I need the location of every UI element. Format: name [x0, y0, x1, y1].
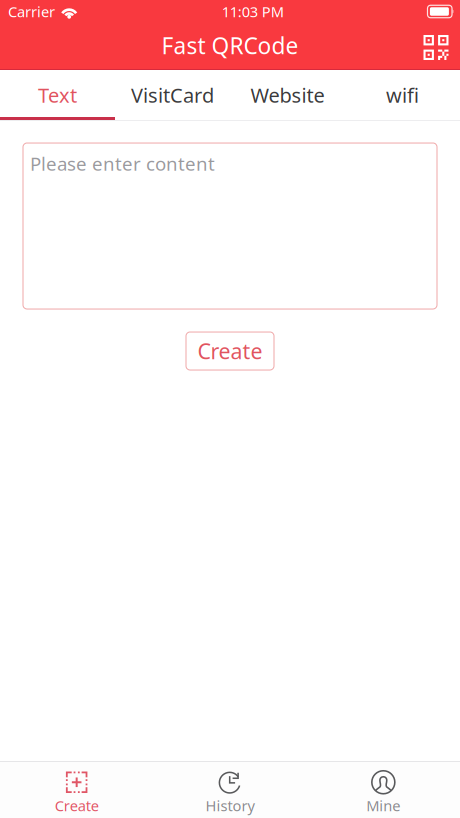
button[interactable]: Website: [230, 70, 345, 120]
staticText: VisitCard: [131, 82, 214, 108]
staticText: 11:03 PM: [222, 2, 284, 21]
staticText: History: [205, 796, 254, 815]
button[interactable]: Scan QR code: [412, 22, 460, 68]
button[interactable]: Text: [0, 70, 115, 120]
button[interactable]: Create: [186, 332, 274, 370]
button[interactable]: Create: [0, 762, 153, 818]
button[interactable]: Mine: [307, 762, 460, 818]
staticText: Website: [250, 82, 324, 108]
staticText: Please enter content: [30, 151, 215, 176]
button[interactable]: VisitCard: [115, 70, 230, 120]
staticText: Carrier: [8, 2, 55, 21]
staticText: Fast QRCode: [161, 30, 298, 60]
staticText: Create: [197, 337, 262, 365]
staticText: Mine: [366, 796, 400, 815]
staticText: Create: [55, 796, 99, 815]
staticText: wifi: [386, 82, 419, 108]
staticText: Text: [38, 82, 77, 108]
button[interactable]: History: [153, 762, 307, 818]
button[interactable]: wifi: [345, 70, 460, 120]
